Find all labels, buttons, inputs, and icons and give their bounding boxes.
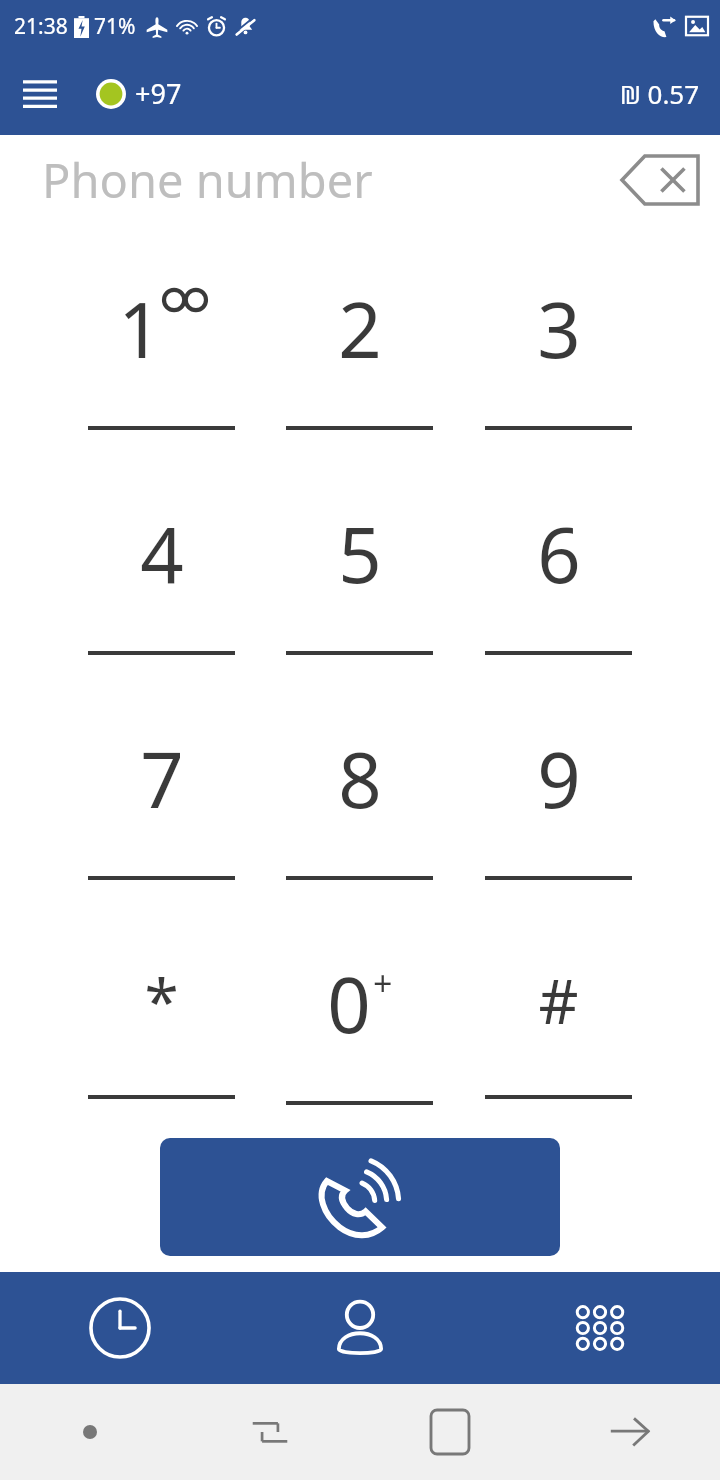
button[interactable]: 3 bbox=[459, 237, 658, 463]
staticText: 0 bbox=[327, 952, 371, 1056]
button[interactable]: Contacts bbox=[240, 1272, 480, 1384]
staticText: 71% bbox=[94, 12, 136, 41]
staticText: + bbox=[373, 960, 393, 1006]
button[interactable]: Home bbox=[360, 1384, 540, 1480]
button[interactable]: 2 bbox=[260, 237, 459, 463]
button[interactable]: 4 bbox=[62, 463, 260, 688]
button[interactable]: Dialpad bbox=[480, 1272, 720, 1384]
button[interactable]: 1 bbox=[62, 237, 260, 463]
staticText: ₪ 0.57 bbox=[620, 76, 700, 111]
button[interactable]: * bbox=[62, 913, 260, 1138]
staticText: 8 bbox=[338, 727, 382, 831]
button[interactable]: 8 bbox=[260, 688, 459, 913]
staticText: 6 bbox=[537, 502, 581, 606]
button[interactable]: 7 bbox=[62, 688, 260, 913]
staticText: # bbox=[538, 958, 579, 1042]
staticText: * bbox=[144, 958, 179, 1042]
button[interactable]: 5 bbox=[260, 463, 459, 688]
button[interactable]: Recent apps bbox=[180, 1384, 360, 1480]
button[interactable]: Menu bbox=[12, 66, 68, 122]
staticText: 5 bbox=[338, 502, 382, 606]
button[interactable]: 6 bbox=[459, 463, 658, 688]
button[interactable]: Call bbox=[160, 1138, 560, 1256]
staticText: 21:38 bbox=[14, 12, 68, 41]
button[interactable]: 0 bbox=[260, 913, 459, 1138]
button[interactable]: ₪ 0.57 bbox=[620, 76, 700, 111]
button[interactable]: 9 bbox=[459, 688, 658, 913]
staticText: 4 bbox=[140, 502, 184, 606]
button[interactable]: Recents bbox=[0, 1272, 240, 1384]
button[interactable]: Backspace bbox=[614, 149, 706, 211]
staticText: Phone number bbox=[42, 148, 373, 212]
staticText: 1 bbox=[118, 277, 162, 381]
button[interactable]: +97 bbox=[96, 75, 182, 112]
button[interactable]: Back bbox=[540, 1384, 720, 1480]
staticText: 3 bbox=[537, 277, 581, 381]
staticText: 7 bbox=[140, 727, 184, 831]
staticText: 2 bbox=[338, 277, 382, 381]
button[interactable]: # bbox=[459, 913, 658, 1138]
staticText: 9 bbox=[537, 727, 581, 831]
staticText: +97 bbox=[135, 75, 182, 112]
